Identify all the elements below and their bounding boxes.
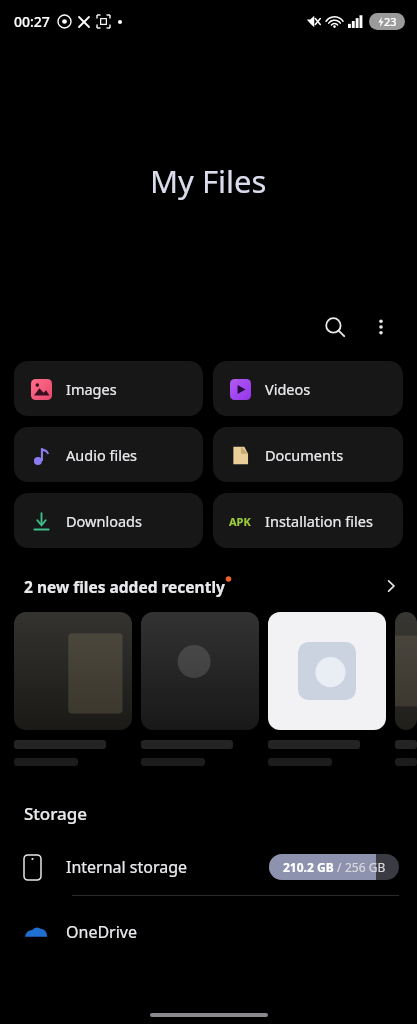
staticText: 256 GB — [345, 859, 386, 875]
staticText: Images — [66, 379, 117, 399]
button[interactable] — [395, 612, 417, 766]
button[interactable]: Downloads — [14, 493, 203, 548]
button[interactable] — [141, 612, 259, 766]
button[interactable]: More options — [359, 305, 403, 349]
button[interactable] — [14, 612, 132, 766]
button[interactable]: Images — [14, 361, 203, 416]
staticText: My Files — [150, 160, 267, 202]
staticText: Storage — [24, 802, 88, 825]
staticText: Audio files — [66, 445, 138, 465]
button[interactable]: Internal storage — [0, 845, 417, 889]
staticText: 23 — [384, 14, 397, 29]
button[interactable]: Audio files — [14, 427, 203, 482]
staticText: Internal storage — [66, 856, 188, 878]
button[interactable]: Videos — [213, 361, 403, 416]
button[interactable]: Documents — [213, 427, 403, 482]
button[interactable]: OneDrive — [0, 910, 417, 954]
button[interactable]: APK — [213, 493, 403, 548]
button[interactable]: 2 new files added recently — [0, 568, 417, 604]
staticText: APK — [229, 514, 251, 529]
staticText: 00:27 — [14, 12, 50, 31]
staticText: OneDrive — [66, 921, 137, 943]
staticText: Downloads — [66, 511, 142, 531]
staticText: / — [334, 859, 345, 875]
staticText: Videos — [265, 379, 311, 399]
staticText: 210.2 GB — [283, 859, 334, 875]
staticText: Installation files — [265, 511, 373, 531]
staticText: 2 new files added recently — [24, 576, 225, 597]
button[interactable] — [268, 612, 386, 766]
button[interactable]: Search — [313, 305, 357, 349]
staticText: Documents — [265, 445, 344, 465]
